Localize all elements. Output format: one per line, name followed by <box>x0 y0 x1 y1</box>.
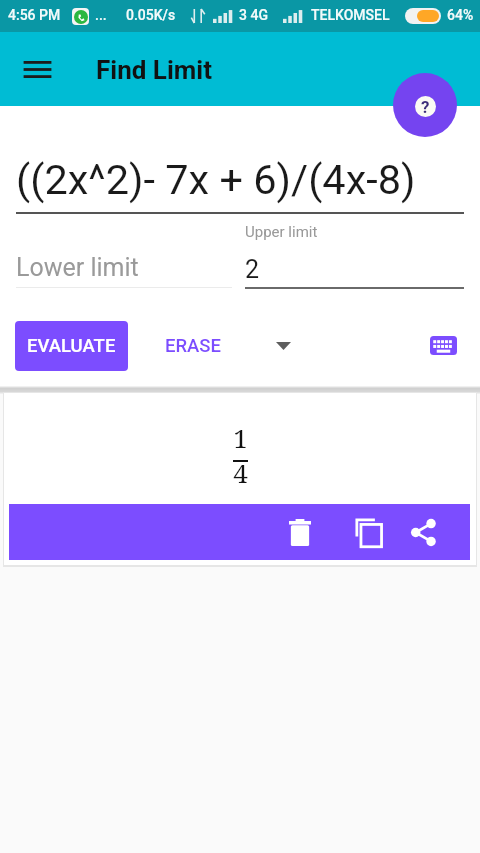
staticText: Upper limit <box>245 223 318 241</box>
staticText: 64% <box>447 7 474 23</box>
button[interactable]: Delete <box>278 510 322 554</box>
staticText: ((2x^2)- 7x + 6)/(4x-8) <box>16 155 416 204</box>
button[interactable]: Copy <box>346 510 390 554</box>
staticText: Lower limit <box>16 253 139 282</box>
staticText: ... <box>95 7 107 23</box>
staticText: Find Limit <box>96 55 212 85</box>
staticText: 4 <box>233 455 248 490</box>
staticText: 4:56 PM <box>8 7 61 23</box>
staticText: 3 4G <box>239 7 268 23</box>
button[interactable]: ERASE <box>150 321 236 371</box>
staticText: 1 <box>233 420 248 455</box>
staticText: ? <box>421 97 430 117</box>
staticText: EVALUATE <box>27 335 116 357</box>
staticText: 0.05K/s <box>126 7 176 23</box>
button[interactable]: Show keyboard <box>424 326 462 364</box>
button[interactable]: EVALUATE <box>15 321 128 371</box>
staticText: ERASE <box>165 335 222 357</box>
button[interactable]: More options <box>264 327 302 365</box>
button[interactable]: Open navigation menu <box>13 45 61 93</box>
staticText: 2 <box>245 255 260 284</box>
button[interactable]: Share <box>401 510 445 554</box>
button[interactable]: Help <box>393 73 457 137</box>
staticText: TELKOMSEL <box>311 7 390 23</box>
